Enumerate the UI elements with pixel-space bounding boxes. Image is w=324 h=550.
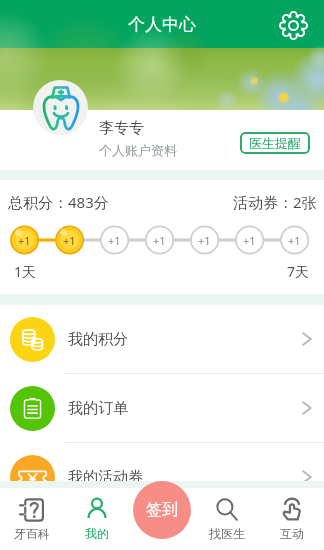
staticText: 我的 [85,526,109,541]
staticText: 1天 [14,262,37,281]
staticText: +1 [153,233,166,248]
staticText: 活动券：2张 [233,192,317,212]
button[interactable]: 互动 [259,488,324,550]
button[interactable]: 找医生 [194,488,259,550]
staticText: 总积分：483分 [8,192,109,212]
staticText: 7天 [287,262,310,281]
staticText: +1 [198,233,211,248]
staticText: +1 [108,233,121,248]
staticText: 互动 [280,526,304,541]
staticText: 我的活动券 [68,468,143,487]
button[interactable]: 我的订单 [0,374,324,442]
staticText: +1 [243,233,256,248]
button[interactable]: 我的积分 [0,305,324,373]
button[interactable]: 我的 [64,488,129,550]
button[interactable]: 牙百科 [0,488,64,550]
staticText: 签到 [146,500,178,520]
staticText: 我的订单 [68,399,128,418]
staticText: 牙百科 [14,526,50,541]
staticText: +1 [288,233,301,248]
staticText: 找医生 [209,526,245,541]
staticText: 个人中心 [128,14,196,35]
staticText: +1 [63,233,76,248]
staticText: 李专专 [99,119,144,138]
staticText: 我的积分 [68,330,128,349]
button[interactable]: 医生提醒 [240,132,310,154]
button[interactable]: 签到 [133,481,191,539]
staticText: 个人账户资料 [99,142,177,158]
button[interactable]: Settings [273,4,313,44]
staticText: 医生提醒 [249,135,301,151]
button[interactable]: 我的活动券 [0,443,324,511]
staticText: +1 [18,233,31,248]
